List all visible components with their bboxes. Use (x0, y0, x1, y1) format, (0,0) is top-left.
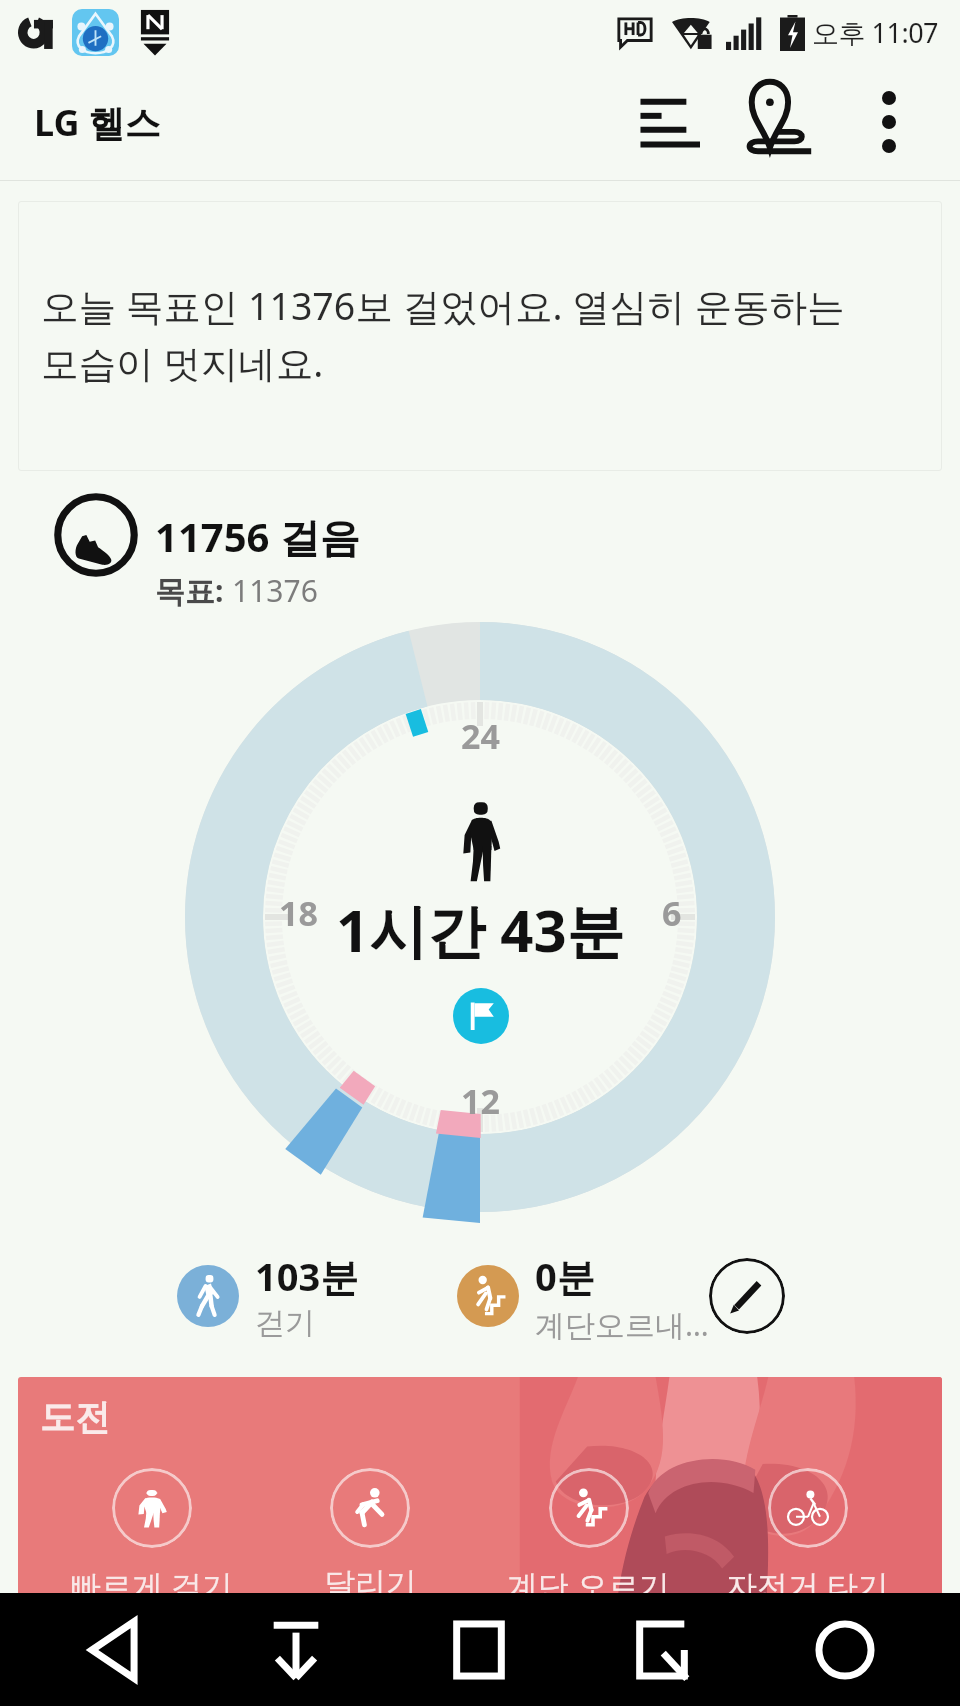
button[interactable]: List (614, 67, 724, 177)
button[interactable]: 자전거 타기 (698, 1468, 917, 1606)
staticText: 목표: (155, 570, 232, 611)
button[interactable]: 계단 오르기 (479, 1468, 698, 1606)
staticText: 11376 (232, 570, 318, 611)
button[interactable]: Screenshot (570, 1593, 753, 1706)
staticText: 모습이 멋지네요. (41, 337, 324, 388)
staticText: 걷기 (255, 1304, 315, 1342)
button[interactable]: 오늘 목표인 11376보 걸었어요. 열심히 운동하는 (18, 201, 942, 471)
staticText: 도전 (40, 1395, 110, 1439)
staticText: 103분 (255, 1250, 359, 1302)
staticText: LG 헬스 (34, 98, 161, 147)
button[interactable]: Location (724, 67, 834, 177)
button[interactable]: 도전 (18, 1377, 942, 1667)
staticText: 11756 걸음 (155, 509, 360, 564)
button[interactable]: Goal (453, 988, 509, 1044)
staticText: 달리기 (324, 1564, 417, 1603)
staticText: 0분 (535, 1250, 595, 1302)
button[interactable]: Recents (753, 1593, 936, 1706)
staticText: 24 (461, 713, 500, 759)
button[interactable]: 빠르게 걷기 (43, 1468, 261, 1606)
button[interactable]: More options (834, 67, 944, 177)
staticText: 계단오르내… (535, 1304, 709, 1342)
button[interactable]: 달리기 (261, 1468, 479, 1603)
button[interactable]: Hide keyboard (204, 1593, 387, 1706)
button[interactable]: 0분 (457, 1250, 709, 1342)
staticText: 오늘 목표인 11376보 걸었어요. 열심히 운동하는 (41, 280, 845, 331)
button[interactable]: 103분 (177, 1250, 359, 1342)
staticText: 오후 11:07 (812, 14, 939, 51)
button[interactable]: Back (22, 1593, 204, 1706)
staticText: 1시간 43분 (336, 890, 625, 969)
staticText: 18 (279, 890, 318, 936)
button[interactable]: Home (387, 1593, 570, 1706)
staticText: 빠르게 걷기 (70, 1564, 234, 1606)
staticText: 자전거 타기 (726, 1564, 890, 1606)
staticText: 12 (461, 1078, 500, 1124)
staticText: 계단 오르기 (507, 1564, 671, 1606)
button[interactable]: Edit (709, 1258, 785, 1334)
staticText: 6 (662, 890, 682, 936)
